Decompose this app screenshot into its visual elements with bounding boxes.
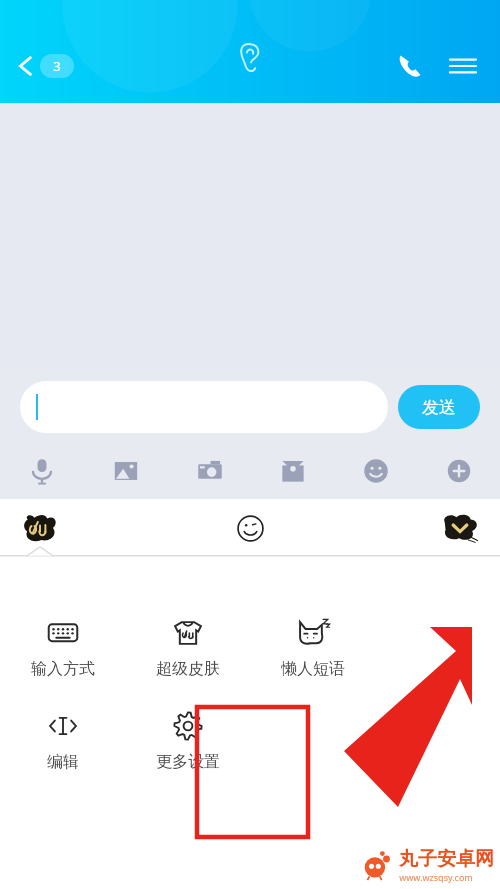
button[interactable]: Hide keyboard [420,499,500,557]
button[interactable]: Gallery [84,443,168,499]
button[interactable] [20,381,388,433]
button[interactable]: Call [388,45,430,87]
button[interactable]: Back, 3 unread [10,47,80,85]
staticText: 编辑 [47,752,79,772]
button[interactable]: 超级皮肤 [125,612,250,683]
button[interactable]: Emoji [222,500,278,556]
button[interactable]: Voice playback [237,42,263,74]
button[interactable]: More [417,443,500,499]
button[interactable]: 编辑 [0,705,125,776]
button[interactable]: Baidu input menu [0,499,80,557]
button[interactable]: 更多设置 [125,705,250,776]
staticText: www.wzsqsy.com [399,871,473,883]
button[interactable]: Red packet [251,443,334,499]
button[interactable]: 懒人短语 [250,612,375,683]
staticText: 丸子安卓网 [399,847,494,871]
staticText: 懒人短语 [281,659,345,679]
staticText: 更多设置 [156,752,220,772]
staticText: 输入方式 [31,659,95,679]
button[interactable]: Emoji [334,443,417,499]
button[interactable]: 输入方式 [0,612,125,683]
button[interactable]: Voice [0,443,84,499]
button[interactable]: 发送 [398,385,480,429]
button[interactable]: Camera [168,443,251,499]
staticText: 3 [53,57,61,75]
staticText: 发送 [422,397,456,418]
button[interactable]: Menu [442,48,484,84]
staticText: 超级皮肤 [156,659,220,679]
